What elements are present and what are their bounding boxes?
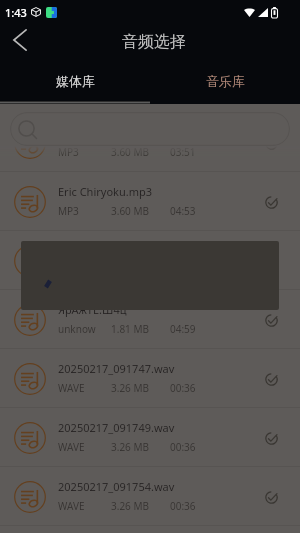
staticText: 00:36 xyxy=(170,381,196,395)
staticText: 03:51 xyxy=(170,145,196,159)
staticText: 3.26 MB xyxy=(111,381,150,395)
staticText: 00:36 xyxy=(170,440,196,454)
staticText: 3.60 MB xyxy=(111,204,150,218)
staticText: 1:43 xyxy=(5,5,27,20)
button[interactable]: Select item xyxy=(261,369,281,389)
staticText: 音频选择 xyxy=(122,32,186,52)
staticText: unknow xyxy=(58,322,96,336)
staticText: 3.26 MB xyxy=(111,440,150,454)
button[interactable]: Select item xyxy=(261,428,281,448)
button[interactable]: 20250217_091749.wav xyxy=(0,408,300,467)
button[interactable]: Eric Chiryoku.mp3 xyxy=(0,172,300,231)
staticText: 04:53 xyxy=(170,204,196,218)
button[interactable]: 20250217_091747.wav xyxy=(0,349,300,408)
button[interactable]: Select item xyxy=(261,251,281,271)
staticText: 20250217_091749.wav xyxy=(58,420,175,435)
staticText: ЯрАжТЕ.Ш4ц xyxy=(58,302,127,317)
staticText: Eric Chiryoku.mp3 xyxy=(58,184,152,199)
staticText: 3.26 MB xyxy=(111,499,150,513)
staticText: WAVE xyxy=(58,381,85,395)
staticText: MP3 xyxy=(58,145,79,159)
staticText: MP3 xyxy=(58,204,79,218)
staticText: 音乐库 xyxy=(206,73,245,89)
staticText: 20250217_091754.wav xyxy=(58,479,175,494)
staticText: WAVE xyxy=(58,499,85,513)
button[interactable]: Windy Hill.mp3 xyxy=(0,113,300,172)
button[interactable]: ЯрАжТЕ.Ш4ц xyxy=(0,290,300,349)
staticText: 20250217_091747.wav xyxy=(58,361,175,376)
button[interactable]: Select item xyxy=(261,310,281,330)
button[interactable]: Select item xyxy=(261,192,281,212)
button[interactable]: 媒体库 xyxy=(0,66,150,104)
staticText: 媒体库 xyxy=(56,73,95,89)
button[interactable]: 音乐库 xyxy=(150,66,300,104)
staticText: 3.60 MB xyxy=(111,145,150,159)
button[interactable]: Waiting Forever.mp3 xyxy=(0,231,300,290)
button[interactable]: Select item xyxy=(261,487,281,507)
staticText: WAVE xyxy=(58,440,85,454)
staticText: 1.81 MB xyxy=(111,322,150,336)
button[interactable]: Back xyxy=(0,26,38,64)
staticText: 00:36 xyxy=(170,499,196,513)
button[interactable]: 20250217_091754.wav xyxy=(0,467,300,526)
staticText: 04:59 xyxy=(170,322,196,336)
